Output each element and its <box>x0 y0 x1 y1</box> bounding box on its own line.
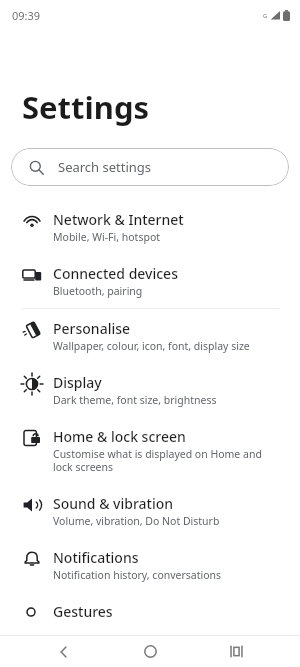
staticText: Settings <box>22 86 150 128</box>
other: Network and Internet <box>22 212 42 230</box>
staticText: Connected devices <box>53 264 178 283</box>
button[interactable]: Home and lock screen <box>0 417 300 484</box>
staticText: Home & lock screen <box>53 427 186 446</box>
staticText: Personalise <box>53 319 131 338</box>
button[interactable]: Personalise <box>0 309 300 363</box>
button[interactable]: Notifications <box>0 538 300 592</box>
staticText: Search settings <box>58 158 152 176</box>
other: Connected devices <box>22 266 42 284</box>
staticText: G <box>263 12 268 20</box>
staticText: Customise what is displayed on Home and … <box>53 447 284 474</box>
other: Display <box>22 375 42 393</box>
button[interactable]: Gestures <box>0 592 300 632</box>
other: Home and lock screen <box>22 429 42 447</box>
button[interactable]: Recent apps <box>214 636 258 667</box>
button[interactable]: Connected devices <box>0 254 300 308</box>
button[interactable]: Search settings <box>11 148 289 186</box>
staticText: Gestures <box>53 602 113 621</box>
staticText: Dark theme, font size, brightness <box>53 393 217 407</box>
staticText: Display <box>53 373 102 392</box>
other: Personalise <box>22 321 42 339</box>
staticText: Wallpaper, colour, icon, font, display s… <box>53 339 250 353</box>
staticText: Volume, vibration, Do Not Disturb <box>53 514 220 528</box>
staticText: Notification history, conversations <box>53 568 222 582</box>
staticText: Bluetooth, pairing <box>53 284 143 298</box>
other: Notifications <box>22 550 42 568</box>
staticText: Mobile, Wi-Fi, hotspot <box>53 230 161 244</box>
button[interactable]: Sound and vibration <box>0 484 300 538</box>
staticText: 09:39 <box>12 8 41 23</box>
staticText: Network & Internet <box>53 210 184 229</box>
button[interactable]: Back <box>42 636 86 667</box>
other: Gestures <box>22 604 42 622</box>
other: Sound and vibration <box>22 496 42 514</box>
button[interactable]: Home <box>128 636 172 667</box>
staticText: Notifications <box>53 548 139 567</box>
button[interactable]: Network and Internet <box>0 200 300 254</box>
staticText: Sound & vibration <box>53 494 174 513</box>
button[interactable]: Display <box>0 363 300 417</box>
